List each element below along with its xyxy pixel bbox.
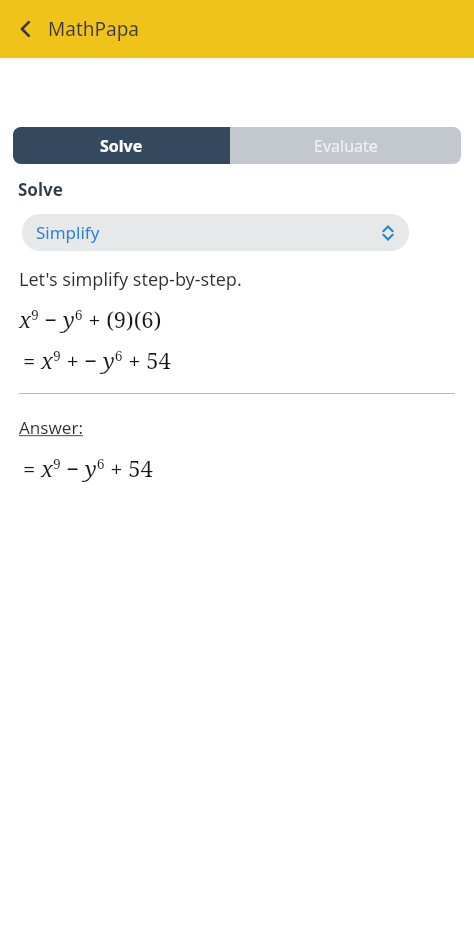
other: Open dropdown bbox=[379, 224, 397, 242]
staticText: Solve bbox=[18, 178, 63, 201]
staticText: = x9 − y6 + 54 bbox=[23, 453, 153, 483]
staticText: Evaluate bbox=[314, 135, 378, 157]
button[interactable]: Simplify bbox=[22, 214, 409, 251]
button[interactable]: Evaluate bbox=[230, 127, 461, 164]
staticText: x9 − y6 + (9)(6) bbox=[19, 304, 162, 334]
button[interactable]: Solve bbox=[13, 127, 230, 164]
staticText: Solve bbox=[100, 135, 143, 157]
staticText: Simplify bbox=[36, 221, 100, 244]
staticText: MathPapa bbox=[48, 16, 139, 42]
staticText: Let's simplify step-by-step. bbox=[19, 267, 242, 292]
staticText: Answer: bbox=[19, 416, 84, 439]
button[interactable]: Back bbox=[6, 9, 46, 49]
staticText: = x9 + − y6 + 54 bbox=[23, 345, 171, 375]
